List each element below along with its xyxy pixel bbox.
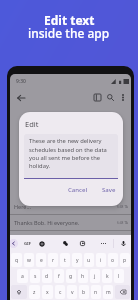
staticText: p (123, 257, 127, 264)
staticText: a (21, 273, 24, 280)
button[interactable]: j (90, 269, 100, 283)
staticText: v (71, 289, 74, 296)
button[interactable]: n (91, 285, 101, 299)
staticText: w (27, 257, 31, 264)
button[interactable]: p (120, 253, 130, 267)
staticText: These are the new delivery schedules (14, 235, 111, 242)
staticText: x (46, 289, 49, 296)
button[interactable]: Save (100, 185, 118, 195)
button[interactable]: Search (104, 91, 117, 104)
staticText: r (52, 257, 55, 264)
button[interactable]: b (79, 285, 89, 299)
staticText: z (33, 289, 36, 296)
staticText: u (87, 257, 91, 264)
staticText: m (106, 289, 111, 296)
staticText: Edit (25, 119, 39, 129)
button[interactable]: Settings (36, 238, 47, 249)
button[interactable]: These are the new delivery schedules (14, 231, 128, 246)
staticText: 6:48 TA (117, 205, 128, 209)
staticText: t (64, 257, 66, 264)
staticText: 6:48 TA (117, 221, 128, 225)
button[interactable]: g (66, 269, 76, 283)
button[interactable]: m (103, 285, 113, 299)
button[interactable]: e (36, 253, 46, 267)
button[interactable]: h (78, 269, 88, 283)
button[interactable]: q (11, 253, 22, 267)
button[interactable]: c (55, 285, 65, 299)
button[interactable]: Voice input (118, 238, 129, 249)
button[interactable]: x (42, 285, 53, 299)
button[interactable]: i (96, 253, 106, 267)
staticText: f (58, 273, 60, 280)
button[interactable]: o (108, 253, 118, 267)
button[interactable]: More options (117, 92, 128, 103)
staticText: e (40, 257, 43, 264)
button[interactable]: z (29, 285, 40, 299)
staticText: Save (102, 186, 116, 194)
staticText: b (82, 289, 86, 296)
staticText: c (59, 289, 62, 296)
staticText: j (94, 273, 96, 280)
button[interactable]: l (114, 269, 124, 283)
staticText: h (81, 273, 85, 280)
staticText: g (69, 273, 73, 280)
button[interactable]: More (98, 238, 109, 249)
button[interactable]: Shift (11, 285, 27, 299)
button[interactable]: Cancel (66, 185, 90, 195)
staticText: n (94, 289, 98, 296)
button[interactable]: y (72, 253, 82, 267)
button[interactable]: Back (14, 91, 27, 104)
staticText: Edit text (44, 12, 95, 28)
button[interactable]: Here... (14, 199, 128, 214)
button[interactable]: t (60, 253, 70, 267)
button[interactable]: Expand toolbar (10, 239, 18, 248)
button[interactable]: GIF (22, 238, 33, 249)
button[interactable]: f (54, 269, 64, 283)
button[interactable]: w (24, 253, 34, 267)
staticText: k (106, 273, 109, 280)
staticText: 9:30 (16, 78, 26, 85)
staticText: s (34, 273, 37, 280)
staticText: Thanks Bob. Hi everyone. (14, 219, 80, 226)
button[interactable]: Stickers (60, 238, 71, 249)
button[interactable]: d (42, 269, 52, 283)
button[interactable]: u (84, 253, 94, 267)
button[interactable]: Archive (91, 91, 104, 104)
staticText: q (15, 257, 19, 264)
button[interactable]: k (102, 269, 112, 283)
button[interactable]: v (67, 285, 77, 299)
button[interactable]: a (17, 269, 28, 283)
staticText: GIF (24, 241, 31, 247)
button[interactable]: r (48, 253, 58, 267)
button[interactable]: Thanks Bob. Hi everyone. (14, 215, 128, 230)
button[interactable]: Clipboard (77, 238, 88, 249)
button[interactable]: s (30, 269, 40, 283)
staticText: d (45, 273, 49, 280)
staticText: l (118, 273, 120, 280)
staticText: i (100, 257, 102, 264)
staticText: Cancel (68, 186, 88, 194)
staticText: o (111, 257, 115, 264)
button[interactable]: Backspace (115, 285, 130, 299)
staticText: y (76, 257, 79, 264)
staticText: inside the app (28, 25, 110, 41)
staticText: These are the new delivery schedules bas… (29, 137, 112, 169)
staticText: Here... (14, 203, 31, 210)
